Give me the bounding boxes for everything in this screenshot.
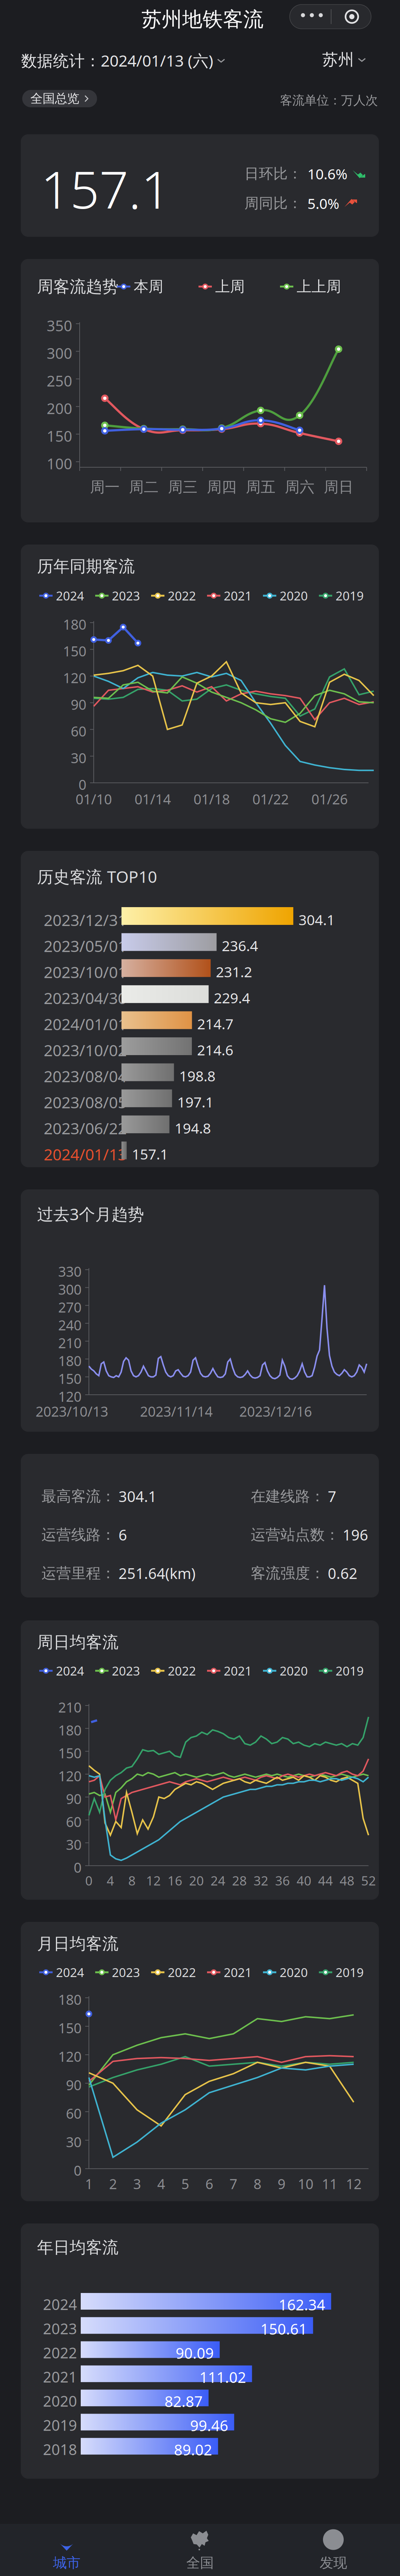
staticText: 197.1 <box>177 1092 214 1111</box>
staticText: 2024 <box>56 1964 84 1980</box>
button[interactable]: 发现 <box>267 2524 400 2576</box>
staticText: 5 <box>181 2175 189 2193</box>
staticText: 2024 <box>56 1663 84 1679</box>
staticText: 周三 <box>168 478 198 496</box>
staticText: 2020 <box>280 1663 308 1679</box>
staticText: 3 <box>133 2175 141 2193</box>
staticText: 180 <box>63 615 86 634</box>
staticText: 01/26 <box>311 790 348 808</box>
staticText: 89.02 <box>174 2440 212 2459</box>
staticText: 周日 <box>324 478 353 496</box>
staticText: 2024 <box>43 2294 77 2314</box>
staticText: 10.6% <box>307 164 347 183</box>
staticText: 运营线路： <box>41 1526 116 1544</box>
staticText: 数据统计：2024/01/13 (六) <box>21 50 213 71</box>
staticText: 2023/04/30 <box>44 987 127 1008</box>
staticText: 2023 <box>112 1964 140 1980</box>
staticText: 240 <box>58 1316 81 1334</box>
staticText: 1 <box>85 2175 93 2193</box>
staticText: 350 <box>47 316 72 335</box>
staticText: 30 <box>71 749 86 767</box>
button[interactable]: 城市 <box>0 2524 133 2576</box>
staticText: 6 <box>119 1525 127 1545</box>
button[interactable]: 数据统计：2024/01/13 (六) <box>20 48 227 73</box>
staticText: 330 <box>58 1262 81 1281</box>
staticText: 本周 <box>134 277 163 296</box>
staticText: 150 <box>58 2019 81 2037</box>
staticText: 2018 <box>43 2439 77 2459</box>
button[interactable]: 全国 <box>133 2524 267 2576</box>
staticText: 150 <box>47 426 72 446</box>
staticText: 36 <box>275 1872 290 1889</box>
staticText: 194.8 <box>175 1118 211 1137</box>
staticText: 40 <box>297 1872 311 1889</box>
button[interactable]: 苏州 <box>321 48 367 72</box>
staticText: 2022 <box>168 1663 196 1679</box>
staticText: 180 <box>58 1721 81 1739</box>
staticText: 01/14 <box>135 790 171 808</box>
staticText: 2020 <box>280 587 308 604</box>
staticText: 2023/10/02 <box>44 1040 127 1061</box>
staticText: 8 <box>254 2175 261 2193</box>
staticText: 4 <box>107 1872 114 1889</box>
staticText: 270 <box>58 1298 81 1316</box>
staticText: 历史客流 TOP10 <box>37 866 157 887</box>
staticText: 300 <box>58 1280 81 1298</box>
staticText: 30 <box>66 1835 81 1854</box>
staticText: 150.61 <box>260 2319 307 2339</box>
staticText: 在建线路： <box>251 1487 325 1505</box>
staticText: 日环比： <box>244 165 302 183</box>
staticText: 2022 <box>168 1964 196 1980</box>
staticText: 120 <box>63 669 86 687</box>
staticText: 30 <box>66 2133 81 2151</box>
staticText: 2023 <box>112 1663 140 1679</box>
staticText: 2020 <box>43 2391 77 2411</box>
staticText: 157.1 <box>132 1144 168 1163</box>
staticText: 60 <box>66 1812 81 1831</box>
staticText: 2023/08/05 <box>44 1092 127 1113</box>
staticText: 2023/05/01 <box>44 935 127 956</box>
staticText: 2023 <box>43 2319 77 2338</box>
button[interactable]: 全国总览 <box>22 90 97 107</box>
staticText: 214.7 <box>197 1014 233 1033</box>
staticText: 9 <box>278 2175 285 2193</box>
staticText: 历年同期客流 <box>37 556 135 576</box>
staticText: 200 <box>47 399 72 418</box>
staticText: 年日均客流 <box>37 2237 119 2257</box>
staticText: 运营站点数： <box>251 1526 340 1544</box>
staticText: 2024/01/13 <box>44 1144 127 1165</box>
staticText: 周五 <box>246 478 275 496</box>
staticText: 上上周 <box>297 277 341 296</box>
staticText: 0 <box>79 775 86 794</box>
staticText: 60 <box>66 2104 81 2123</box>
staticText: 2020 <box>280 1964 308 1980</box>
staticText: 20 <box>189 1872 204 1889</box>
staticText: 150 <box>58 1744 81 1762</box>
staticText: 2022 <box>43 2343 77 2362</box>
staticText: 5.0% <box>307 194 339 213</box>
button[interactable]: More <box>290 4 371 29</box>
staticText: 2021 <box>43 2367 77 2387</box>
staticText: 10 <box>298 2175 313 2193</box>
staticText: 客流单位：万人次 <box>280 93 378 108</box>
staticText: 196 <box>343 1525 368 1545</box>
staticText: 最高客流： <box>41 1487 116 1505</box>
staticText: 157.1 <box>41 155 170 223</box>
staticText: 229.4 <box>214 988 250 1007</box>
staticText: 150 <box>58 1369 81 1388</box>
staticText: 120 <box>58 1767 81 1785</box>
staticText: 12 <box>146 1872 161 1889</box>
staticText: 2019 <box>336 1663 364 1679</box>
staticText: 全国 <box>186 2554 214 2571</box>
staticText: 全国总览 <box>30 91 79 106</box>
staticText: 2023/12/16 <box>239 1402 312 1420</box>
staticText: 90 <box>66 1790 81 1808</box>
staticText: 162.34 <box>279 2295 325 2314</box>
staticText: 过去3个月趋势 <box>37 1203 144 1225</box>
staticText: 2023 <box>112 587 140 604</box>
staticText: 150 <box>63 642 86 660</box>
staticText: 周一 <box>90 478 120 496</box>
staticText: 6 <box>205 2175 213 2193</box>
staticText: 210 <box>58 1698 81 1716</box>
staticText: 0 <box>85 1872 93 1889</box>
